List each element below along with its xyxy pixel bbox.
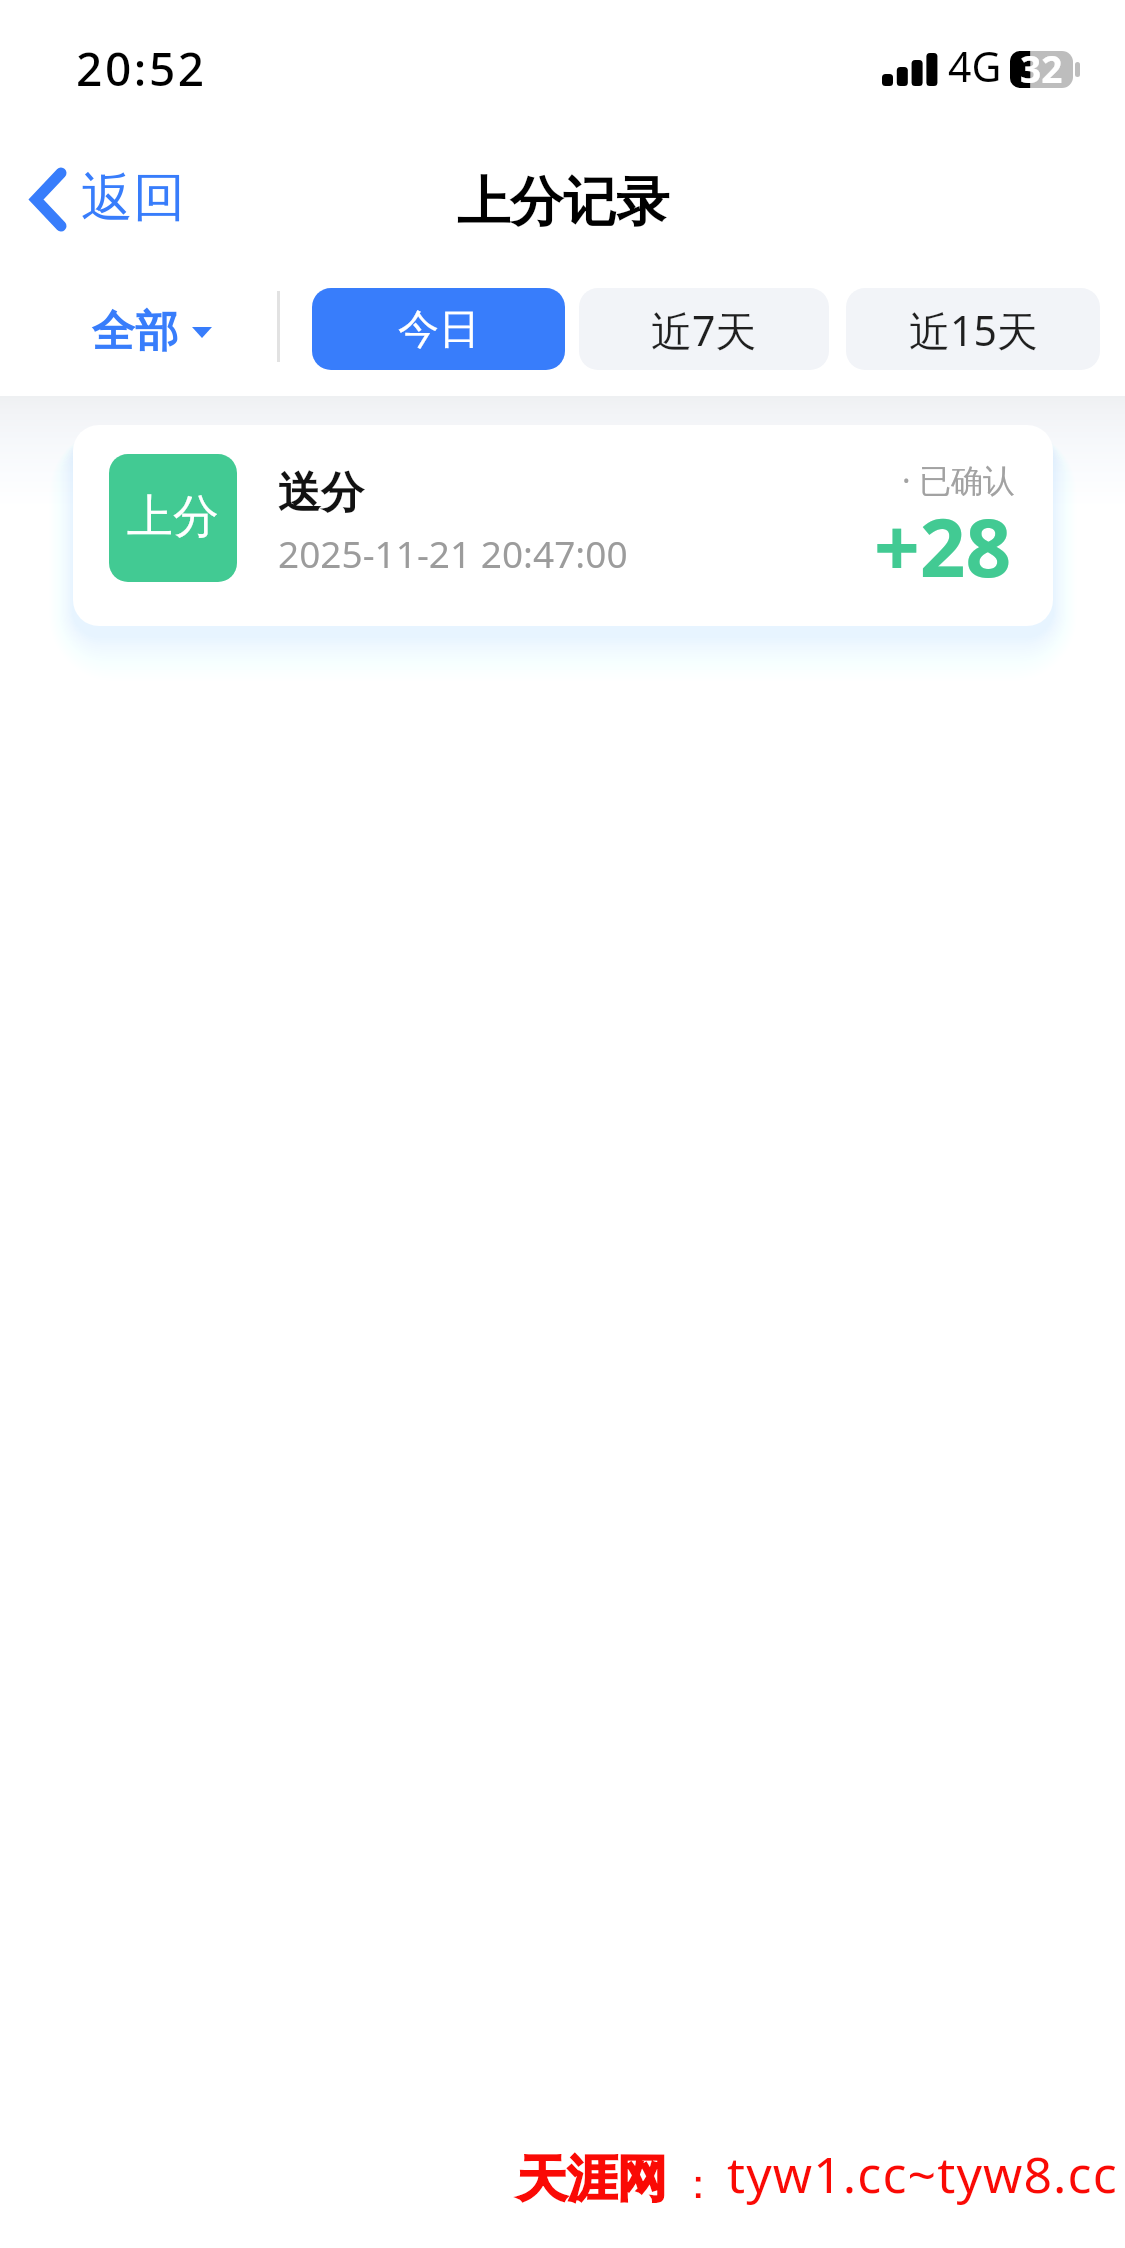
staticText: ： xyxy=(677,2158,719,2211)
staticText: 全部 xyxy=(92,305,178,359)
button[interactable]: 近15天 xyxy=(846,288,1100,370)
staticText: 返回 xyxy=(81,165,185,231)
staticText: 今日 xyxy=(398,304,480,356)
staticText: 4G xyxy=(948,38,1002,94)
button[interactable]: 今日 xyxy=(312,288,565,370)
button[interactable]: 全部 xyxy=(76,292,228,366)
staticText: tyw1.cc~tyw8.cc xyxy=(727,2140,1118,2208)
button[interactable]: 近7天 xyxy=(579,288,829,370)
staticText: · 已确认 xyxy=(902,458,1015,502)
staticText: 送分 xyxy=(278,466,364,520)
staticText: 天涯网 xyxy=(517,2148,667,2211)
staticText: 近15天 xyxy=(909,302,1038,358)
button[interactable]: 上分 xyxy=(73,425,1053,626)
staticText: 近7天 xyxy=(651,302,757,358)
staticText: 20:52 xyxy=(76,37,207,100)
button[interactable]: 返回 xyxy=(14,156,197,242)
staticText: +28 xyxy=(874,491,1012,600)
staticText: 上分 xyxy=(127,488,219,546)
staticText: 2025-11-21 20:47:00 xyxy=(278,528,628,578)
staticText: 上分记录 xyxy=(457,169,669,236)
staticText: 32 xyxy=(1020,43,1063,93)
